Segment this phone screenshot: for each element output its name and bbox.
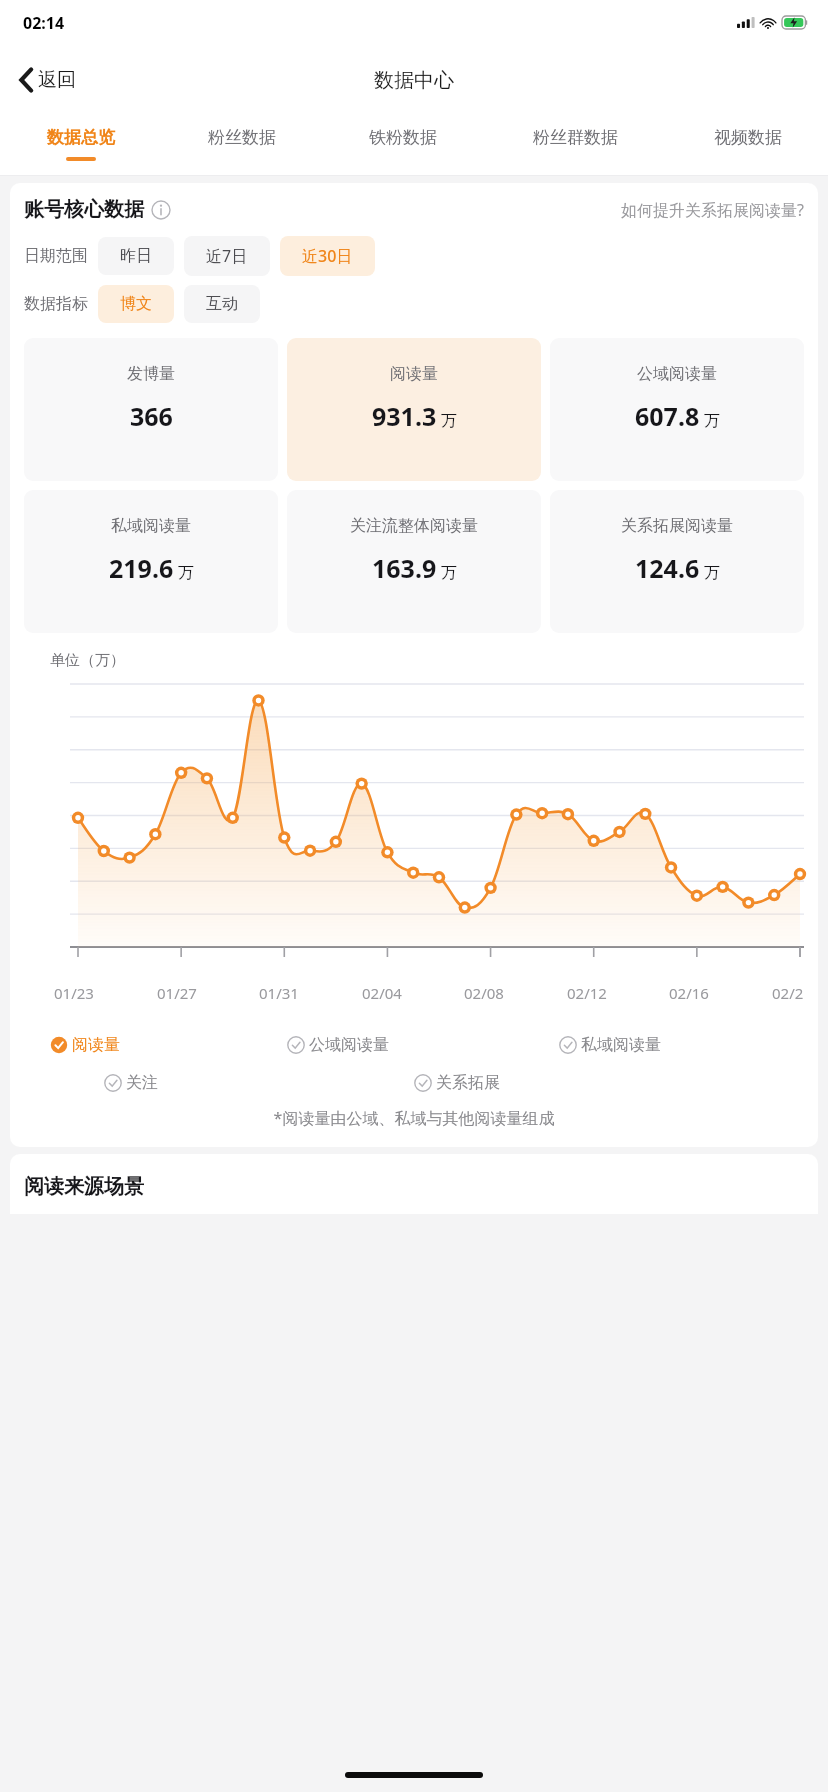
- button[interactable]: 公域阅读量: [287, 1035, 559, 1055]
- staticText: 单位（万）: [50, 651, 125, 670]
- staticText: 数据总览: [47, 127, 115, 148]
- button[interactable]: 粉丝数据: [161, 119, 322, 157]
- button[interactable]: 铁粉数据: [322, 119, 483, 157]
- staticText: 931.3: [372, 399, 437, 433]
- staticText: 219.6: [109, 551, 174, 585]
- button[interactable]: 公域阅读量: [550, 338, 804, 481]
- staticText: 近7日: [206, 245, 248, 267]
- staticText: 私域阅读量: [111, 516, 191, 536]
- staticText: 近30日: [302, 245, 353, 267]
- button[interactable]: 粉丝群数据: [483, 119, 667, 157]
- staticText: 万: [441, 563, 457, 583]
- button[interactable]: 近7日: [184, 236, 270, 276]
- staticText: 日期范围: [24, 246, 88, 266]
- staticText: 互动: [206, 294, 238, 314]
- staticText: 视频数据: [714, 127, 782, 148]
- button[interactable]: 近30日: [280, 236, 375, 276]
- staticText: 02:14: [23, 12, 65, 34]
- staticText: 01/31: [259, 983, 299, 1003]
- staticText: 阅读来源场景: [24, 1174, 144, 1199]
- staticText: 关注: [126, 1073, 158, 1093]
- button[interactable]: 关系拓展: [414, 1073, 724, 1093]
- staticText: 万: [178, 563, 194, 583]
- staticText: 昨日: [120, 246, 152, 266]
- button[interactable]: 关注: [104, 1073, 414, 1093]
- button[interactable]: 私域阅读量: [559, 1035, 796, 1055]
- button[interactable]: 如何提升关系拓展阅读量?: [621, 199, 804, 221]
- staticText: 账号核心数据: [24, 197, 144, 222]
- staticText: 124.6: [635, 551, 700, 585]
- button[interactable]: 博文: [98, 285, 174, 323]
- staticText: 粉丝群数据: [533, 127, 618, 148]
- staticText: 数据指标: [24, 294, 88, 314]
- button[interactable]: 发博量: [24, 338, 278, 481]
- staticText: 02/2: [772, 983, 804, 1003]
- staticText: 如何提升关系拓展阅读量?: [621, 199, 804, 221]
- staticText: *阅读量由公域、私域与其他阅读量组成: [24, 1107, 804, 1129]
- staticText: 607.8: [635, 399, 700, 433]
- staticText: 发博量: [127, 364, 175, 384]
- staticText: 阅读量: [390, 364, 438, 384]
- staticText: 粉丝数据: [208, 127, 276, 148]
- staticText: 万: [704, 411, 720, 431]
- staticText: 关系拓展: [436, 1073, 500, 1093]
- staticText: 铁粉数据: [369, 127, 437, 148]
- staticText: 163.9: [372, 551, 437, 585]
- button[interactable]: 关注流整体阅读量: [287, 490, 541, 633]
- staticText: 万: [441, 411, 457, 431]
- button[interactable]: 互动: [184, 285, 260, 323]
- staticText: 阅读量: [72, 1035, 120, 1055]
- staticText: 02/08: [464, 983, 504, 1003]
- staticText: 01/27: [157, 983, 197, 1003]
- staticText: 数据中心: [374, 68, 454, 93]
- staticText: 02/16: [669, 983, 709, 1003]
- button[interactable]: 关系拓展阅读量: [550, 490, 804, 633]
- staticText: 私域阅读量: [581, 1035, 661, 1055]
- button[interactable]: 阅读量: [50, 1035, 287, 1055]
- staticText: 博文: [120, 294, 152, 314]
- staticText: 01/23: [54, 983, 94, 1003]
- button[interactable]: 说明: [151, 200, 171, 220]
- staticText: 关注流整体阅读量: [350, 516, 478, 536]
- button[interactable]: 阅读量: [287, 338, 541, 481]
- staticText: 公域阅读量: [309, 1035, 389, 1055]
- staticText: 万: [704, 563, 720, 583]
- button[interactable]: 数据总览: [0, 119, 161, 161]
- button[interactable]: 私域阅读量: [24, 490, 278, 633]
- staticText: 公域阅读量: [637, 364, 717, 384]
- staticText: 02/12: [567, 983, 607, 1003]
- button[interactable]: 昨日: [98, 237, 174, 275]
- staticText: 返回: [38, 68, 76, 92]
- button[interactable]: 视频数据: [667, 119, 828, 157]
- staticText: 02/04: [362, 983, 402, 1003]
- button[interactable]: 返回: [14, 62, 82, 98]
- staticText: 关系拓展阅读量: [621, 516, 733, 536]
- staticText: 366: [130, 399, 173, 433]
